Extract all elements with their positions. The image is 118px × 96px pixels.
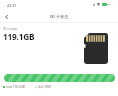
staticText: 119.1GB: [3, 31, 35, 42]
staticText: 剩余 9MB: [38, 85, 52, 89]
staticText: 已用 118.3GB: [6, 85, 25, 89]
staticText: 22:31: [7, 3, 16, 8]
staticText: SD 卡总容量: [3, 27, 18, 31]
staticText: SD 卡状态: [0, 14, 118, 20]
button[interactable]: Back: [1, 11, 12, 22]
